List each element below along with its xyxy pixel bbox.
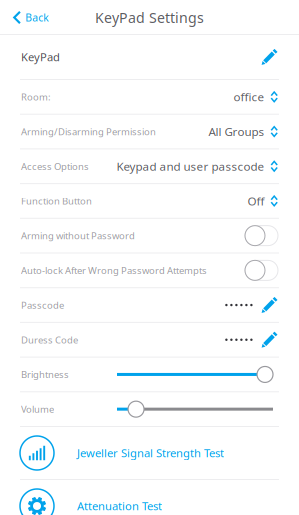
staticText: Attenuation Test xyxy=(77,498,162,514)
staticText: Access Options xyxy=(21,160,89,173)
staticText: Function Button xyxy=(21,194,92,207)
button[interactable]: Function Button xyxy=(0,184,299,219)
button[interactable]: Auto-lock After Wrong Password Attempts xyxy=(0,253,299,288)
staticText: Brightness xyxy=(21,368,69,381)
button[interactable]: Arming/Disarming Permission xyxy=(0,115,299,149)
staticText: Off xyxy=(247,193,264,209)
staticText: Room: xyxy=(21,90,51,103)
staticText: Jeweller Signal Strength Test xyxy=(77,445,224,461)
button[interactable]: Attenuation Test xyxy=(0,480,299,515)
button[interactable]: KeyPad xyxy=(0,35,299,80)
staticText: All Groups xyxy=(208,124,264,139)
staticText: Arming/Disarming Permission xyxy=(21,125,156,138)
button[interactable]: Access Options xyxy=(0,149,299,184)
button[interactable]: Room: xyxy=(0,80,299,115)
staticText: office xyxy=(233,89,264,105)
button[interactable]: Jeweller Signal Strength Test xyxy=(0,427,299,480)
button[interactable]: Duress Code xyxy=(0,323,299,358)
staticText: Back xyxy=(25,10,49,25)
staticText: Arming without Password xyxy=(21,229,135,242)
button[interactable]: Arming without Password xyxy=(0,219,299,253)
staticText: Auto-lock After Wrong Password Attempts xyxy=(21,264,207,277)
button[interactable]: Back xyxy=(0,0,57,34)
staticText: KeyPad xyxy=(21,49,60,65)
button[interactable]: Passcode xyxy=(0,288,299,323)
staticText: Volume xyxy=(21,403,54,416)
staticText: Passcode xyxy=(21,299,64,311)
staticText: Duress Code xyxy=(21,333,78,346)
staticText: Keypad and user passcode xyxy=(116,158,264,174)
staticText: KeyPad Settings xyxy=(95,8,204,27)
